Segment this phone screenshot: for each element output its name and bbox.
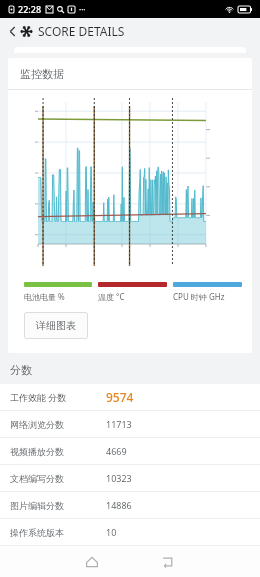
staticText: 网络浏览分数	[10, 419, 96, 430]
button[interactable]: 详细图表	[24, 312, 88, 339]
button[interactable]: 操作系统版本	[0, 519, 260, 546]
staticText: 视频播放分数	[10, 446, 96, 457]
staticText: 详细图表	[36, 319, 76, 332]
staticText: SCORE DETAILS	[38, 23, 125, 39]
staticText: 工作效能 分数	[10, 391, 96, 403]
staticText: CPU 时钟 GHz	[173, 291, 225, 302]
staticText: 温度 °C	[98, 291, 125, 302]
staticText: 电池电量 %	[24, 291, 65, 302]
staticText: 10323	[106, 472, 132, 484]
button[interactable]: 视频播放分数	[0, 438, 260, 465]
staticText: 图片编辑分数	[10, 500, 96, 511]
button[interactable]: Back	[4, 23, 20, 39]
staticText: 4669	[106, 445, 127, 457]
staticText: 11713	[106, 418, 132, 430]
staticText: 10	[106, 526, 117, 538]
staticText: 监控数据	[20, 67, 64, 81]
staticText: 22:28	[18, 3, 42, 15]
staticText: 9574	[106, 389, 134, 405]
button[interactable]: 文档编写分数	[0, 465, 260, 492]
staticText: 文档编写分数	[10, 473, 96, 484]
staticText: 分数	[10, 363, 32, 377]
staticText: 操作系统版本	[10, 527, 96, 538]
button[interactable]: 图片编辑分数	[0, 492, 260, 519]
button[interactable]: Back	[154, 549, 180, 575]
staticText: 14886	[106, 499, 132, 511]
staticText: ···	[79, 4, 86, 15]
button[interactable]: 网络浏览分数	[0, 411, 260, 438]
button[interactable]: 工作效能 分数	[0, 384, 260, 411]
button[interactable]: Home	[79, 549, 105, 575]
